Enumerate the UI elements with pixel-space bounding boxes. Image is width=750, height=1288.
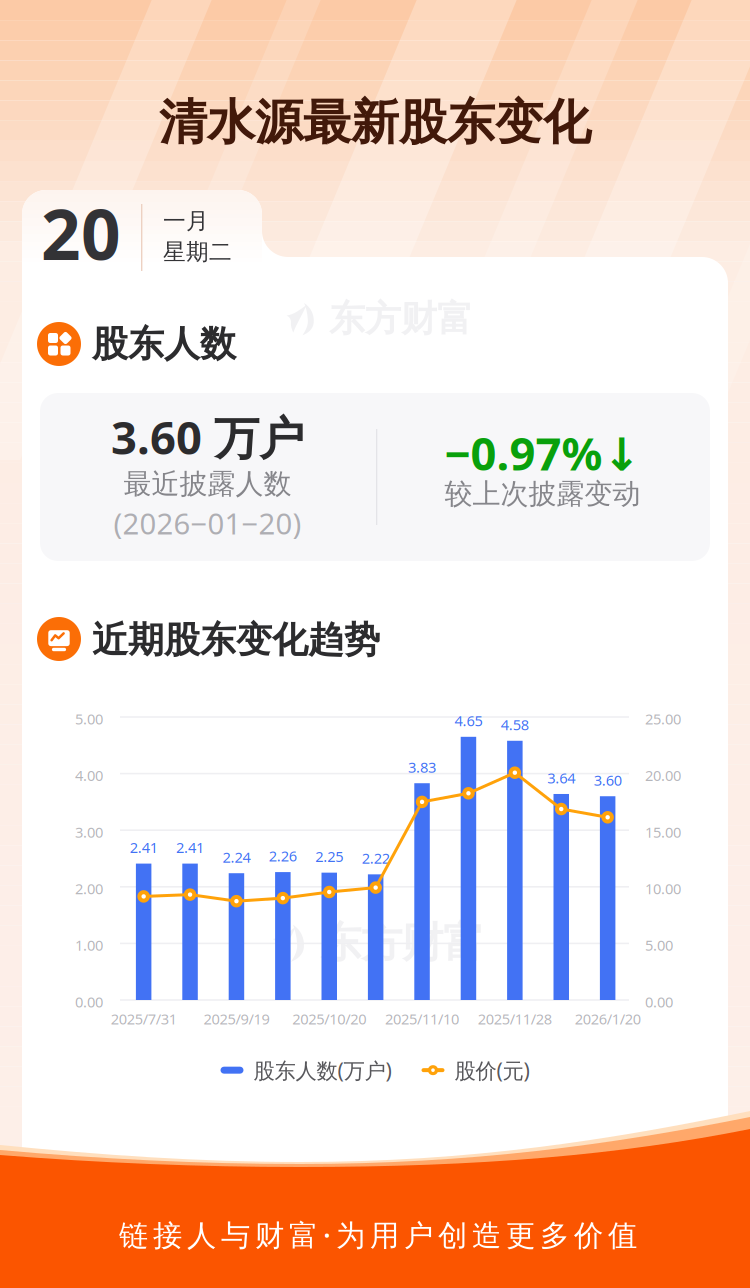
staticText: 25.00 — [645, 709, 681, 728]
staticText: 2.41 — [176, 838, 204, 857]
staticText: (2026−01−20) — [113, 503, 301, 542]
staticText: 20 — [41, 187, 121, 279]
staticText: 2.25 — [315, 847, 343, 866]
staticText: 近期股东变化趋势 — [92, 618, 380, 662]
staticText: −0.97%↓ — [444, 423, 640, 483]
staticText: 10.00 — [645, 879, 681, 898]
staticText: 3.60 — [594, 770, 622, 790]
staticText: 链接人与财富·为用户创造更多价值 — [119, 1215, 637, 1254]
staticText: 4.00 — [75, 766, 103, 785]
staticText: 2025/10/20 — [292, 1009, 366, 1028]
staticText: 股东人数(万户) — [253, 1056, 391, 1084]
staticText: 1.00 — [75, 935, 103, 955]
staticText: 15.00 — [645, 822, 681, 842]
staticText: 2025/7/31 — [111, 1009, 177, 1028]
staticText: 3.60 万户 — [111, 407, 304, 467]
staticText: 2026/1/20 — [575, 1009, 641, 1028]
staticText: 清水源最新股东变化 — [159, 93, 591, 152]
staticText: 东方财富 — [320, 917, 484, 968]
staticText: 4.65 — [454, 711, 482, 730]
staticText: 2025/11/10 — [385, 1009, 459, 1028]
staticText: 最近披露人数 — [123, 467, 291, 501]
staticText: 5.00 — [75, 709, 103, 728]
staticText: 东方财富 — [329, 297, 473, 341]
staticText: 2.00 — [75, 879, 103, 898]
staticText: 0.00 — [75, 992, 103, 1011]
staticText: 星期二 — [163, 238, 232, 266]
staticText: 5.00 — [645, 935, 673, 955]
staticText: 0.00 — [645, 992, 673, 1011]
staticText: 2.41 — [130, 838, 158, 857]
staticText: 3.00 — [75, 822, 103, 842]
staticText: 2.22 — [362, 848, 390, 868]
staticText: 一月 — [163, 207, 209, 235]
staticText: 2.26 — [269, 846, 297, 866]
staticText: 股东人数 — [92, 322, 236, 366]
staticText: 3.64 — [547, 768, 575, 787]
staticText: 股价(元) — [454, 1056, 529, 1084]
staticText: 2025/11/28 — [478, 1009, 552, 1028]
staticText: 2.24 — [222, 847, 250, 867]
staticText: 4.58 — [501, 715, 529, 734]
staticText: 2025/9/19 — [203, 1009, 269, 1028]
staticText: 较上次披露变动 — [444, 477, 640, 511]
staticText: 20.00 — [645, 766, 681, 785]
staticText: 3.83 — [408, 757, 436, 777]
